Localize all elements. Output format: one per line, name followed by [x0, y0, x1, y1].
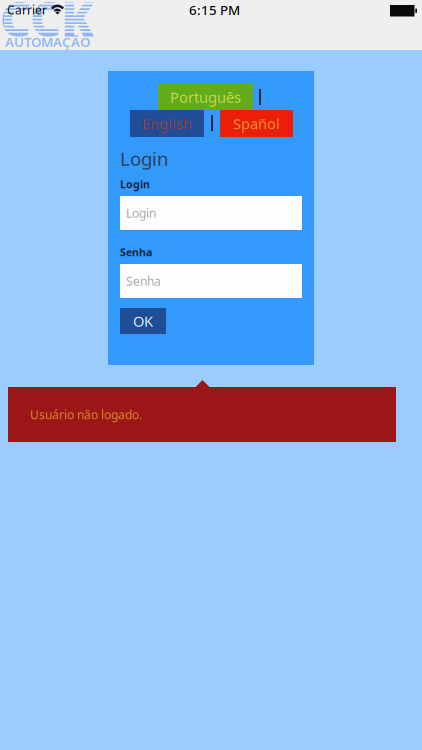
staticText: OK: [133, 311, 153, 331]
button[interactable]: English: [130, 110, 204, 137]
staticText: Login: [120, 146, 169, 171]
staticText: 6:15 PM: [189, 1, 240, 19]
staticText: Carrier: [7, 2, 47, 18]
button[interactable]: Spañol: [220, 110, 293, 137]
staticText: Senha: [120, 245, 152, 259]
staticText: Login: [126, 205, 156, 221]
staticText: Usuário não logado.: [30, 406, 142, 422]
button[interactable]: OK: [120, 308, 166, 334]
staticText: Spañol: [233, 114, 280, 133]
staticText: CCK: [0, 0, 94, 50]
staticText: AUTOMAÇÃO: [5, 33, 90, 51]
button[interactable]: Português: [158, 84, 253, 110]
staticText: Senha: [126, 273, 161, 289]
staticText: English: [142, 114, 192, 133]
staticText: Login: [120, 177, 150, 191]
staticText: Português: [170, 87, 241, 107]
